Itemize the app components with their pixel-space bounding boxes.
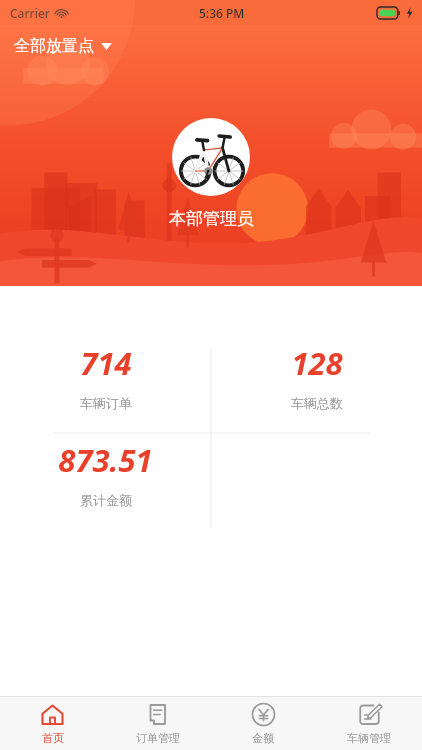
staticText: 首页: [42, 731, 64, 745]
other: 车辆管理: [357, 702, 382, 727]
staticText: 5:36 PM: [199, 5, 245, 21]
staticText: 车辆管理: [347, 731, 391, 745]
button[interactable]: 全部放置点: [12, 34, 114, 58]
staticText: 714: [80, 342, 132, 384]
staticText: 128: [291, 342, 343, 384]
other: 首页: [40, 702, 65, 727]
staticText: 本部管理员: [169, 208, 254, 229]
staticText: Carrier: [10, 5, 50, 21]
other: 金额: [251, 702, 276, 727]
staticText: 车辆总数: [291, 395, 343, 411]
staticText: 873.51: [58, 439, 153, 481]
button[interactable]: 128: [211, 342, 422, 411]
button[interactable]: 714: [0, 342, 211, 411]
button[interactable]: 首页: [0, 697, 105, 750]
button[interactable]: 订单管理: [105, 697, 210, 750]
staticText: 车辆订单: [80, 395, 132, 411]
other: 订单管理: [145, 702, 170, 727]
staticText: 累计金额: [80, 492, 132, 508]
staticText: 全部放置点: [14, 36, 94, 56]
button[interactable]: 金额: [210, 697, 316, 750]
staticText: 金额: [252, 731, 274, 745]
button[interactable]: 873.51: [0, 439, 211, 508]
staticText: 订单管理: [136, 731, 180, 745]
button[interactable]: 车辆管理: [316, 697, 422, 750]
